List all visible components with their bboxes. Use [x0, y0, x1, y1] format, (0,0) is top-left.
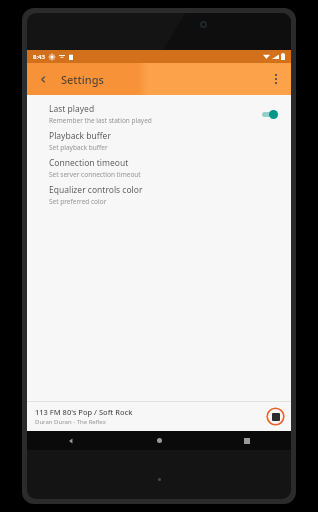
staticText: Set playback buffer: [49, 143, 108, 152]
staticText: Connection timeout: [49, 157, 129, 169]
staticText: Settings: [61, 72, 104, 87]
button[interactable]: Connection timeout: [27, 154, 291, 181]
staticText: Set server connection timeout: [49, 170, 141, 179]
staticText: Duran Duran - The Reflex: [35, 418, 106, 426]
staticText: Set preferred color: [49, 197, 107, 206]
button[interactable]: Back: [27, 431, 115, 450]
staticText: Playback buffer: [49, 130, 111, 142]
button[interactable]: Last played: [27, 100, 291, 127]
staticText: Remember the last station played: [49, 116, 152, 125]
button[interactable]: Last played toggle: [259, 107, 281, 121]
button[interactable]: Back: [33, 69, 53, 89]
button[interactable]: Home: [115, 431, 203, 450]
button[interactable]: 113 FM 80's Pop / Soft Rock: [27, 401, 291, 431]
staticText: Last played: [49, 103, 95, 115]
staticText: 8:43: [33, 53, 45, 61]
button[interactable]: Stop: [266, 407, 285, 426]
button[interactable]: More options: [265, 68, 287, 90]
staticText: Equalizer controls color: [49, 184, 143, 196]
button[interactable]: Recent apps: [203, 431, 291, 450]
button[interactable]: Playback buffer: [27, 127, 291, 154]
button[interactable]: Equalizer controls color: [27, 181, 291, 208]
staticText: 113 FM 80's Pop / Soft Rock: [35, 407, 133, 417]
